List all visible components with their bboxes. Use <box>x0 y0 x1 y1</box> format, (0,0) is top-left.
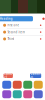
staticText: First one <box>7 23 19 27</box>
staticText: Second item <box>7 30 24 34</box>
button[interactable]: Second item <box>1 29 43 36</box>
button[interactable]: Cancel <box>3 73 13 78</box>
staticText: Confirm <box>31 72 41 79</box>
button[interactable]: Third <box>1 36 43 42</box>
staticText: Heading <box>0 17 13 20</box>
staticText: Third <box>7 37 14 41</box>
button[interactable]: First one <box>1 22 43 29</box>
button[interactable]: Close <box>41 16 45 21</box>
button[interactable]: Confirm <box>30 73 41 78</box>
staticText: Cancel <box>4 72 12 79</box>
button[interactable]: Heading <box>0 16 33 21</box>
